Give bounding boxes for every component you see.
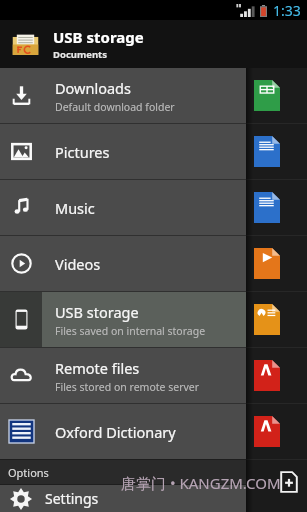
staticText: Remote files (55, 358, 140, 378)
staticText: Default download folder (55, 100, 175, 114)
button[interactable]: Oxford Dictionary (0, 404, 246, 459)
button[interactable] (0, 404, 307, 459)
button[interactable] (0, 68, 307, 123)
staticText: Documents (53, 48, 107, 61)
button[interactable] (0, 180, 307, 235)
button[interactable] (0, 348, 307, 403)
button[interactable] (0, 236, 307, 291)
button[interactable]: Remote files (0, 348, 246, 403)
staticText: Settings (45, 489, 99, 508)
staticText: Oxford Dictionary (55, 422, 176, 442)
button[interactable] (0, 292, 307, 347)
button[interactable]: New file (276, 469, 302, 495)
button[interactable]: Videos (0, 236, 246, 291)
staticText: Music (55, 198, 95, 218)
button[interactable]: Settings (0, 485, 246, 512)
staticText: Options (8, 465, 49, 480)
staticText: USB storage (53, 27, 144, 47)
staticText: Videos (55, 254, 101, 274)
staticText: Pictures (55, 142, 110, 162)
button[interactable]: USB storage (0, 20, 307, 68)
staticText: Files saved on internal storage (55, 324, 206, 338)
button[interactable]: Music (0, 180, 246, 235)
staticText: Files stored on remote server (55, 380, 200, 394)
staticText: 1:33 (273, 1, 301, 20)
button[interactable]: USB storage (0, 292, 246, 347)
staticText: USB storage (55, 302, 139, 322)
button[interactable]: Pictures (0, 124, 246, 179)
button[interactable] (0, 124, 307, 179)
staticText: Downloads (55, 78, 131, 98)
button[interactable]: Downloads (0, 68, 246, 123)
staticText: 唐掌门 • KANGZM.COM (121, 473, 281, 493)
